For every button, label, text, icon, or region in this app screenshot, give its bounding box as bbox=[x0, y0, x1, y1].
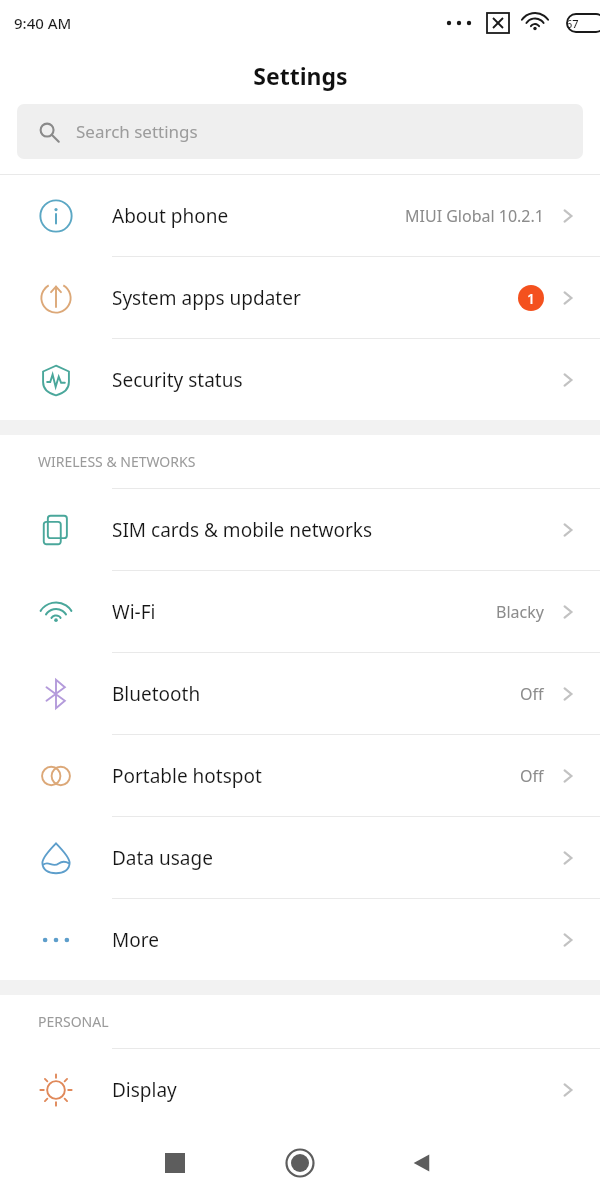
staticText: Off bbox=[520, 765, 544, 787]
staticText: Bluetooth bbox=[112, 681, 520, 707]
staticText: PERSONAL bbox=[38, 1012, 109, 1031]
staticText: MIUI Global 10.2.1 bbox=[405, 205, 544, 227]
staticText: WIRELESS & NETWORKS bbox=[38, 452, 196, 471]
staticText: Portable hotspot bbox=[112, 763, 520, 789]
staticText: Settings bbox=[253, 60, 348, 91]
button[interactable]: Portable hotspot bbox=[0, 735, 600, 816]
button[interactable]: Home bbox=[285, 1148, 315, 1178]
button[interactable]: Bluetooth bbox=[0, 653, 600, 734]
staticText: Off bbox=[520, 683, 544, 705]
button[interactable]: Data usage bbox=[0, 817, 600, 898]
button[interactable]: Display bbox=[0, 1049, 600, 1130]
staticText: Security status bbox=[112, 367, 544, 393]
button[interactable]: Search settings bbox=[17, 104, 583, 159]
button[interactable]: Wi-Fi bbox=[0, 571, 600, 652]
button[interactable]: Security status bbox=[0, 339, 600, 420]
staticText: Blacky bbox=[496, 601, 544, 623]
staticText: More bbox=[112, 927, 544, 953]
button[interactable]: Recents bbox=[163, 1151, 187, 1175]
staticText: About phone bbox=[112, 203, 405, 229]
staticText: 9:40 AM bbox=[14, 13, 72, 33]
staticText: 67 bbox=[566, 16, 579, 31]
button[interactable]: Back bbox=[409, 1150, 435, 1176]
staticText: Display bbox=[112, 1077, 544, 1103]
staticText: System apps updater bbox=[112, 285, 518, 311]
staticText: SIM cards & mobile networks bbox=[112, 517, 544, 543]
staticText: 1 bbox=[527, 289, 536, 308]
staticText: Search settings bbox=[76, 120, 198, 143]
staticText: Data usage bbox=[112, 845, 544, 871]
button[interactable]: SIM cards & mobile networks bbox=[0, 489, 600, 570]
button[interactable]: System apps updater bbox=[0, 257, 600, 338]
button[interactable]: More bbox=[0, 899, 600, 980]
staticText: Wi-Fi bbox=[112, 599, 496, 625]
button[interactable]: About phone bbox=[0, 175, 600, 256]
